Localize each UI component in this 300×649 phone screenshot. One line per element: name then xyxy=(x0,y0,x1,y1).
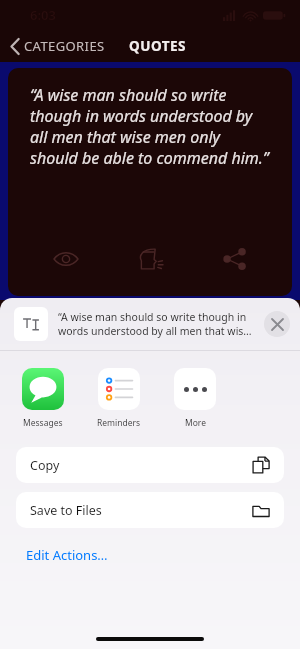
button[interactable]: Close xyxy=(264,311,290,337)
button[interactable]: Messages xyxy=(16,365,70,429)
button[interactable]: Edit Actions… xyxy=(16,540,118,570)
staticText: “A wise man should so write though in wo… xyxy=(58,310,256,338)
staticText: Edit Actions… xyxy=(26,546,108,564)
staticText: Messages xyxy=(23,417,63,429)
button[interactable]: Save to Files xyxy=(16,492,284,528)
staticText: Reminders xyxy=(97,417,141,429)
staticText: 6:03 xyxy=(30,6,56,24)
button[interactable]: CATEGORIES xyxy=(8,33,108,59)
button[interactable]: Copy xyxy=(16,447,284,483)
staticText: More xyxy=(185,417,206,429)
button[interactable]: Reminders xyxy=(92,365,146,429)
button[interactable]: Reveal xyxy=(48,246,84,272)
staticText: Save to Files xyxy=(30,502,252,519)
staticText: “A wise man should so write though in wo… xyxy=(30,84,272,169)
staticText: Copy xyxy=(30,457,252,474)
button[interactable]: Speak xyxy=(132,242,170,276)
button[interactable]: Share xyxy=(218,243,252,275)
staticText: CATEGORIES xyxy=(24,37,105,55)
staticText: QUOTES xyxy=(129,37,186,55)
button[interactable]: More xyxy=(168,365,222,429)
